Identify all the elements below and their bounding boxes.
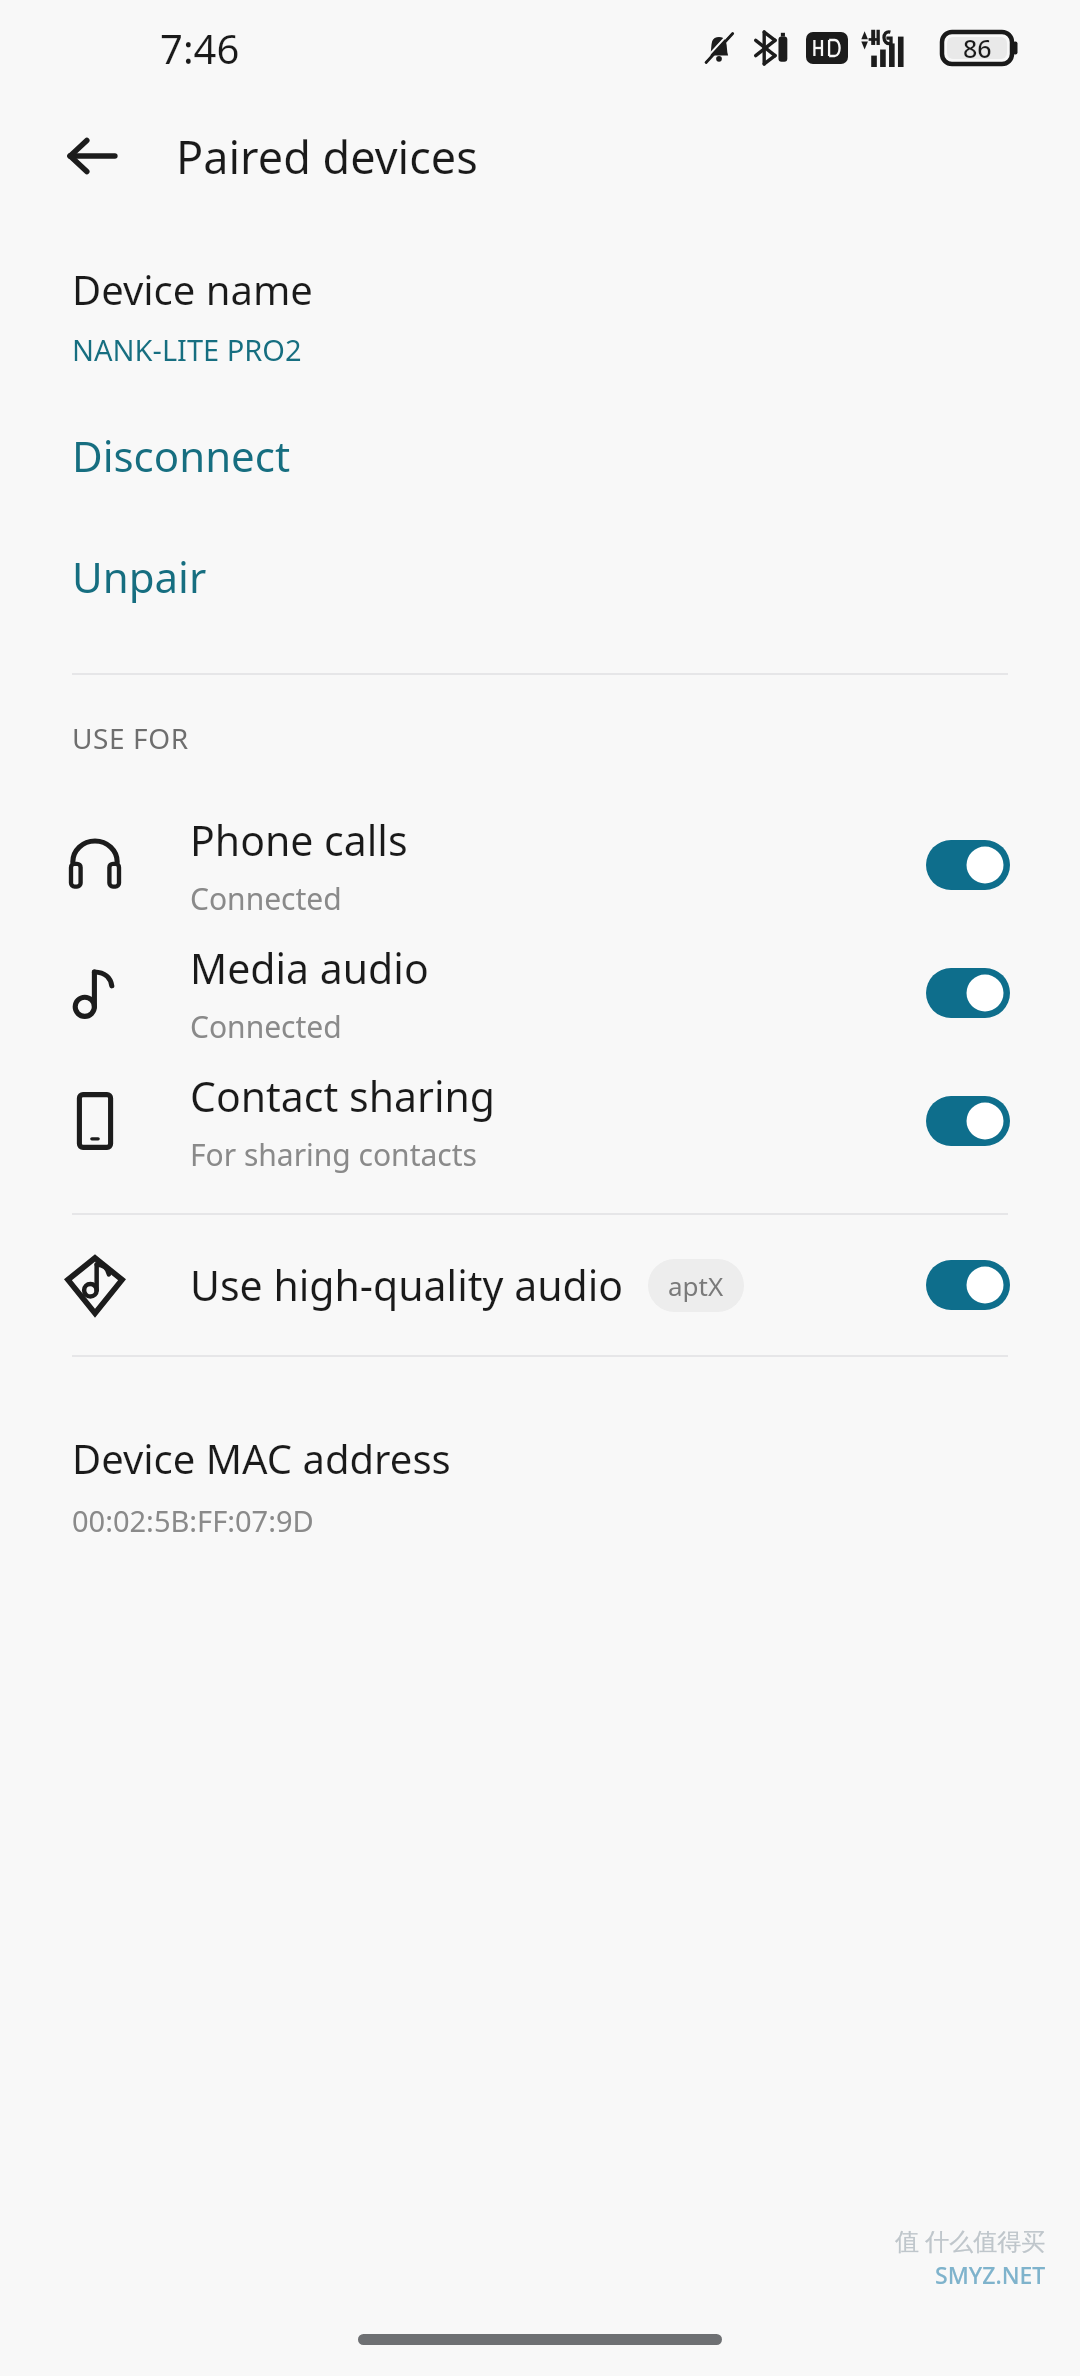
button[interactable]: Back <box>48 112 136 200</box>
button[interactable]: Toggle on <box>926 1260 1010 1310</box>
staticText: Device MAC address <box>72 1431 451 1485</box>
button[interactable]: Home gesture <box>358 2334 722 2345</box>
staticText: For sharing contacts <box>190 1134 477 1175</box>
button[interactable]: Media audio <box>0 929 1080 1057</box>
staticText: Connected <box>190 878 342 919</box>
staticText: Disconnect <box>72 427 291 484</box>
button[interactable]: Toggle on <box>926 968 1010 1018</box>
button[interactable]: Toggle on <box>926 1096 1010 1146</box>
staticText: Device name <box>72 262 313 316</box>
staticText: Contact sharing <box>190 1068 496 1124</box>
staticText: 值 什么值得买 <box>895 2224 1046 2257</box>
button[interactable]: Device name <box>0 258 1080 373</box>
staticText: Connected <box>190 1006 342 1047</box>
button[interactable]: Disconnect <box>0 421 1080 490</box>
staticText: Paired devices <box>176 126 478 187</box>
staticText: Phone calls <box>190 812 408 868</box>
staticText: USE FOR <box>72 719 189 757</box>
button[interactable]: Phone calls <box>0 801 1080 929</box>
staticText: Unpair <box>72 548 207 605</box>
staticText: aptX <box>668 1268 724 1303</box>
button[interactable]: Toggle on <box>926 840 1010 890</box>
button[interactable]: Unpair <box>0 542 1080 611</box>
staticText: Use high-quality audio <box>190 1257 624 1313</box>
staticText: 00:02:5B:FF:07:9D <box>72 1501 314 1540</box>
staticText: Media audio <box>190 940 429 996</box>
button[interactable]: Contact sharing <box>0 1057 1080 1185</box>
button[interactable]: Device MAC address <box>0 1427 1080 1544</box>
staticText: SMYZ.NET <box>935 2259 1046 2290</box>
staticText: 86 <box>963 31 992 65</box>
staticText: NANK-LITE PRO2 <box>72 330 302 369</box>
staticText: 7:46 <box>160 21 240 75</box>
button[interactable]: Use high-quality audio <box>0 1215 1080 1355</box>
